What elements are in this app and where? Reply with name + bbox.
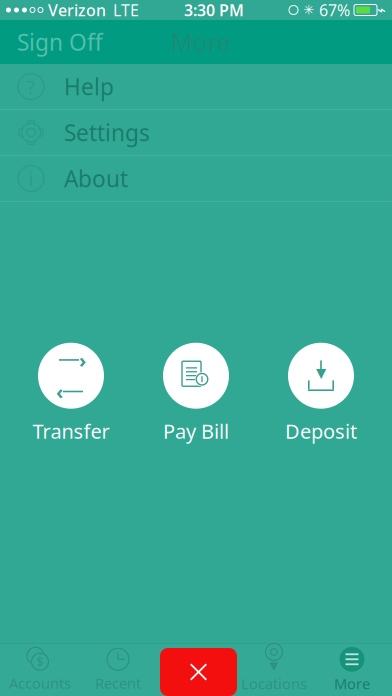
button[interactable]: Pay Bill (144, 343, 248, 444)
staticText: Sign Off (17, 27, 103, 57)
staticText: More (334, 674, 370, 693)
staticText: Verizon (48, 0, 106, 21)
staticText: Accounts (9, 673, 71, 693)
button[interactable]: Settings (0, 110, 392, 156)
button[interactable]: Close (160, 648, 237, 696)
staticText: Transfer (32, 418, 109, 444)
staticText: 3:30 PM (184, 0, 244, 21)
staticText: i (28, 166, 33, 191)
button[interactable]: i (0, 156, 392, 202)
staticText: About (64, 163, 128, 193)
staticText: Recent (95, 673, 141, 693)
staticText: Pay Bill (163, 418, 229, 444)
staticText: ? (27, 74, 35, 99)
button[interactable]: Sign Off (7, 19, 113, 65)
button[interactable]: $ (1, 644, 79, 696)
staticText: 67% (319, 0, 350, 21)
staticText: Settings (64, 117, 150, 147)
staticText: LTE (113, 0, 139, 21)
staticText: ▼ (316, 365, 326, 380)
staticText: ✳ (303, 2, 314, 17)
staticText: More (171, 26, 231, 58)
staticText: Help (64, 71, 114, 101)
staticText: ⌁ (377, 2, 386, 18)
staticText: ‹ (56, 378, 63, 405)
staticText: ▾ (269, 655, 278, 675)
button[interactable]: › (19, 343, 123, 444)
button[interactable]: Recent (79, 644, 157, 696)
button[interactable]: ▾ (235, 644, 313, 696)
button[interactable]: ▼ (269, 343, 373, 444)
button[interactable]: More (313, 644, 391, 696)
staticText: Locations (241, 674, 307, 693)
staticText: › (79, 347, 86, 373)
staticText: Deposit (285, 418, 357, 444)
staticText: $ (36, 654, 43, 670)
button[interactable]: ? (0, 64, 392, 110)
